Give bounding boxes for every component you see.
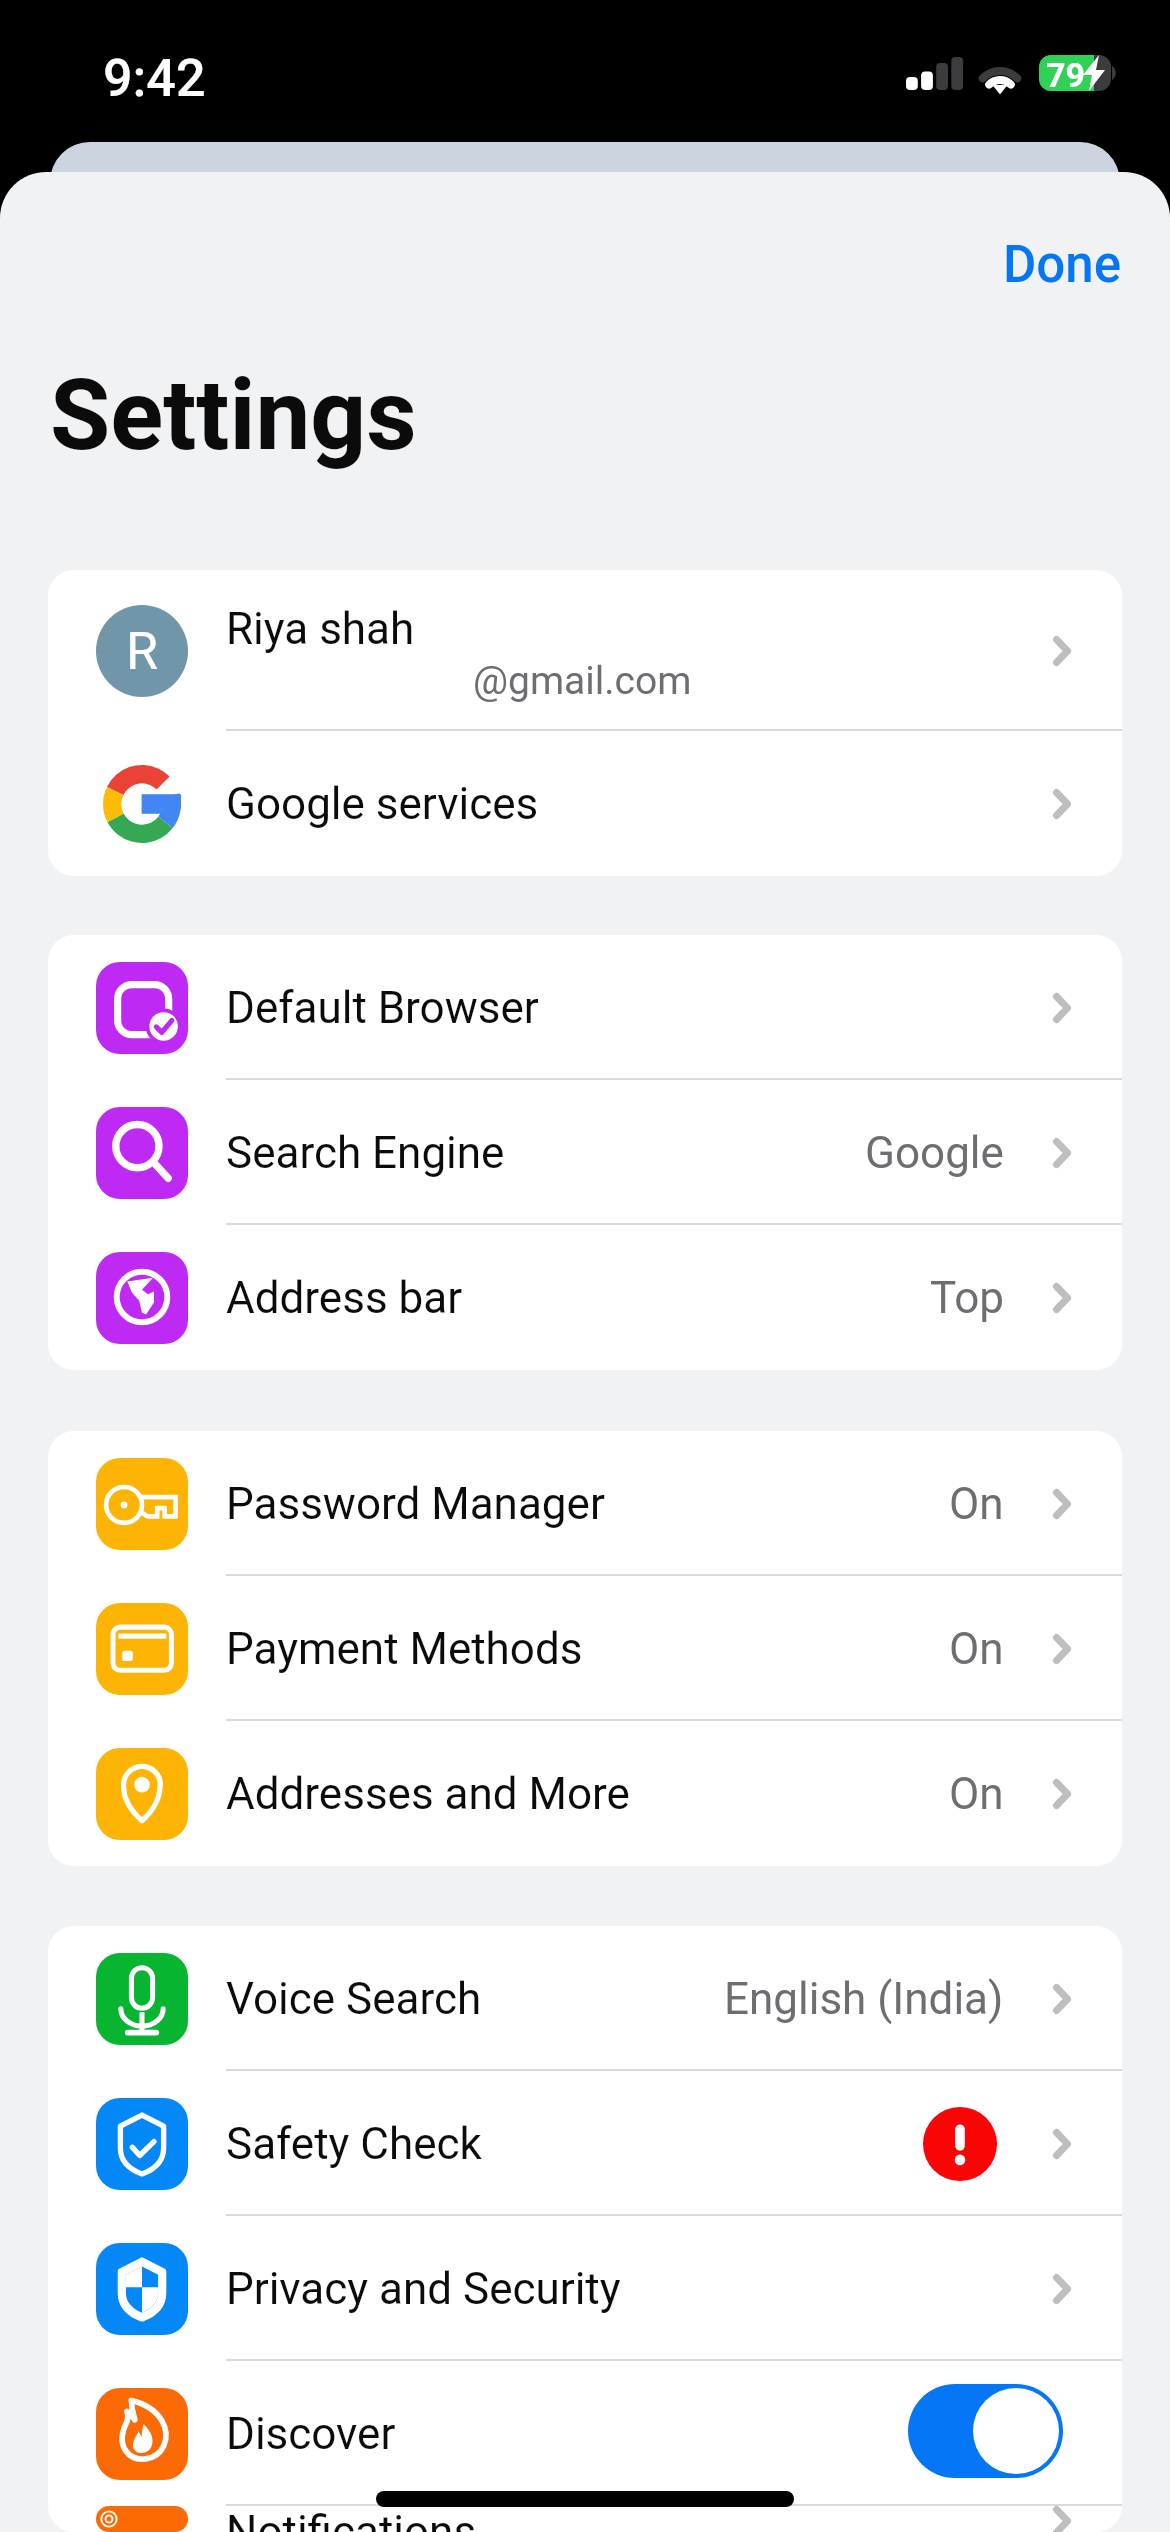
staticText: Default Browser xyxy=(226,982,1053,1034)
staticText: On xyxy=(949,1478,1004,1530)
button[interactable]: Done xyxy=(981,223,1144,307)
button[interactable]: Safety Check xyxy=(48,2071,1122,2216)
staticText: Done xyxy=(1003,235,1122,295)
staticText: Address bar xyxy=(226,1272,930,1324)
staticText: Discover xyxy=(226,2408,908,2460)
button[interactable]: Google services xyxy=(48,731,1122,876)
staticText: Notifications xyxy=(226,2506,1053,2532)
staticText: R xyxy=(126,621,159,682)
staticText: Google services xyxy=(226,778,1053,830)
button[interactable]: Privacy and Security xyxy=(48,2216,1122,2361)
staticText: Google xyxy=(865,1127,1004,1179)
staticText: Addresses and More xyxy=(226,1768,949,1820)
staticText: Safety Check xyxy=(226,2118,923,2170)
button[interactable]: Voice Search xyxy=(48,1926,1122,2071)
staticText: Password Manager xyxy=(226,1478,949,1530)
button[interactable]: Search Engine xyxy=(48,1080,1122,1225)
staticText: 9:42 xyxy=(103,48,206,109)
staticText: Privacy and Security xyxy=(226,2263,1053,2315)
other: Warning xyxy=(923,2107,997,2181)
staticText: Search Engine xyxy=(226,1127,865,1179)
button[interactable]: Password Manager xyxy=(48,1431,1122,1576)
staticText: Settings xyxy=(50,358,417,473)
staticText: Riya shah xyxy=(226,603,415,655)
button[interactable]: Default Browser xyxy=(48,935,1122,1080)
staticText: Voice Search xyxy=(226,1973,724,2025)
staticText: Payment Methods xyxy=(226,1623,949,1675)
button[interactable]: R xyxy=(48,570,1122,731)
button[interactable]: Discover toggle xyxy=(908,2384,1063,2478)
staticText: On xyxy=(949,1768,1004,1820)
staticText: On xyxy=(949,1623,1004,1675)
button[interactable]: Address bar xyxy=(48,1225,1122,1370)
staticText: English (India) xyxy=(724,1973,1004,2025)
button[interactable]: Notifications xyxy=(48,2506,1122,2532)
button[interactable]: Discover xyxy=(48,2361,1122,2506)
button[interactable]: Payment Methods xyxy=(48,1576,1122,1721)
staticText: 79 xyxy=(1046,55,1086,95)
staticText: Top xyxy=(930,1272,1004,1324)
staticText: @gmail.com xyxy=(473,658,692,704)
button[interactable]: Addresses and More xyxy=(48,1721,1122,1866)
